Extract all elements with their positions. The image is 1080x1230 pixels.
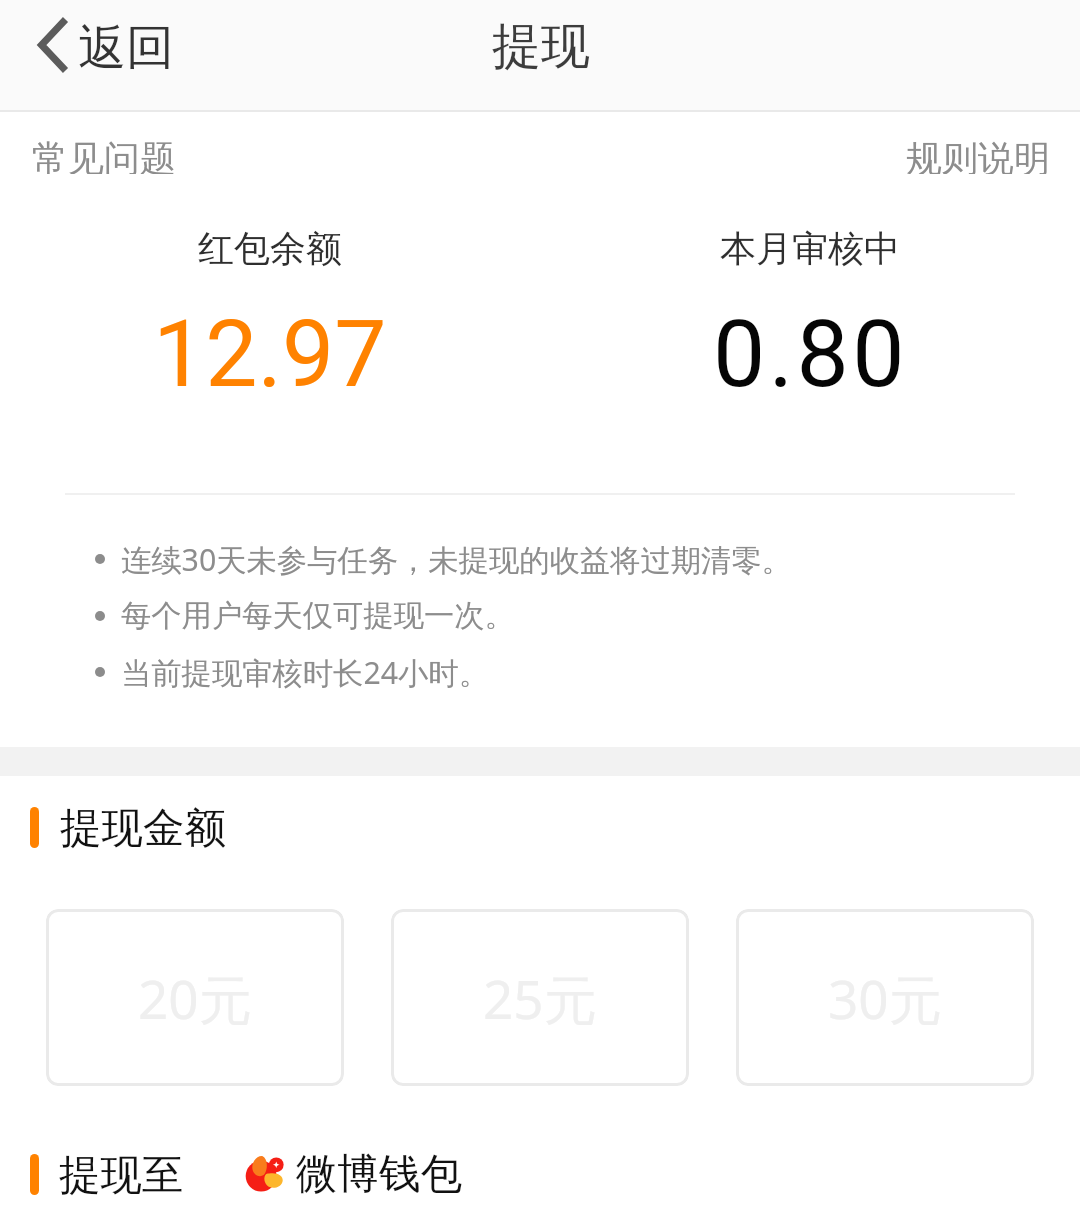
button[interactable]: 常见问题 <box>32 130 176 180</box>
staticText: 常见问题 <box>32 136 176 174</box>
staticText: 提现至 <box>59 1149 184 1201</box>
button[interactable]: 20元 <box>46 909 344 1086</box>
button[interactable]: 返回 <box>26 15 188 95</box>
staticText: 每个用户每天仅可提现一次。 <box>121 597 515 635</box>
staticText: 返回 <box>78 18 174 78</box>
button[interactable]: 微博钱包 <box>238 1148 462 1200</box>
other: 微博钱包 <box>242 1151 288 1197</box>
staticText: 微博钱包 <box>296 1148 462 1200</box>
staticText: 当前提现审核时长24小时。 <box>121 652 489 693</box>
staticText: 提现 <box>492 16 590 78</box>
button[interactable]: 25元 <box>391 909 689 1086</box>
staticText: 红包余额 <box>198 226 342 271</box>
staticText: 提现金额 <box>60 802 226 854</box>
staticText: 规则说明 <box>906 136 1050 174</box>
button[interactable]: 30元 <box>736 909 1034 1086</box>
staticText: 25元 <box>483 962 597 1034</box>
staticText: 本月审核中 <box>720 226 900 271</box>
staticText: 20元 <box>138 962 252 1034</box>
button[interactable]: 规则说明 <box>906 130 1050 180</box>
staticText: 0.80 <box>713 300 908 409</box>
staticText: 12.97 <box>153 300 387 409</box>
staticText: 连续30天未参与任务，未提现的收益将过期清零。 <box>121 539 792 580</box>
staticText: 30元 <box>828 962 942 1034</box>
